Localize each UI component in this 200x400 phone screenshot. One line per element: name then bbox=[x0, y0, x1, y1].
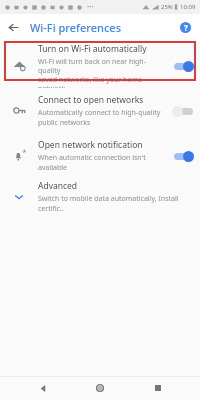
button[interactable]: Open network notification bbox=[166, 133, 200, 178]
staticText: 10:09 bbox=[180, 3, 196, 11]
staticText: Open network notification bbox=[38, 139, 143, 151]
button[interactable]: Recents bbox=[143, 376, 173, 400]
staticText: Connect to open networks bbox=[38, 94, 144, 106]
button[interactable]: Back bbox=[0, 14, 26, 40]
button[interactable]: Connect to open networks bbox=[166, 88, 200, 133]
button[interactable]: Connect to open networks bbox=[0, 88, 200, 133]
staticText: Switch to mobile data automatically, Ins… bbox=[38, 194, 196, 214]
staticText: Wi-Fi will turn back on near high-qualit… bbox=[38, 57, 166, 75]
button[interactable]: Turn on Wi-Fi automatically bbox=[0, 43, 200, 88]
staticText: available bbox=[38, 163, 68, 173]
staticText: Advanced bbox=[38, 180, 78, 192]
staticText: ••• bbox=[87, 3, 94, 11]
button[interactable]: Help bbox=[172, 14, 198, 40]
staticText: Turn on Wi-Fi automatically bbox=[38, 43, 147, 55]
staticText: When automatic connection isn't bbox=[38, 153, 146, 163]
button[interactable]: Advanced bbox=[0, 178, 200, 216]
staticText: ? bbox=[184, 22, 188, 33]
button[interactable]: Turn on Wi-Fi automatically bbox=[166, 43, 200, 88]
staticText: saved networks, like your home network bbox=[38, 75, 166, 88]
button[interactable]: Back bbox=[28, 376, 58, 400]
button[interactable]: Open network notification bbox=[0, 133, 200, 178]
button[interactable]: Home bbox=[85, 376, 115, 400]
staticText: public networks bbox=[38, 118, 91, 128]
staticText: Automatically connect to high-quality bbox=[38, 108, 161, 118]
staticText: Wi-Fi preferences bbox=[30, 20, 122, 35]
staticText: 25% bbox=[161, 3, 173, 11]
